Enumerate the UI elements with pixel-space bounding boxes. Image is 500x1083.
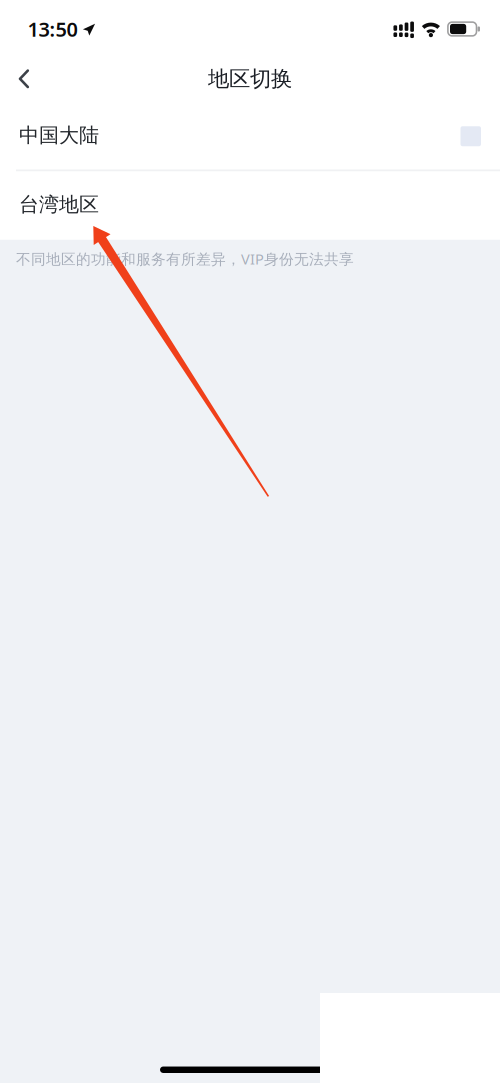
button[interactable]: 中国大陆 [0,103,500,169]
staticText: 13:50 [27,16,77,42]
staticText: 中国大陆 [19,123,99,148]
staticText: 地区切换 [208,66,292,92]
staticText: 不同地区的功能和服务有所差异，VIP身份无法共享 [16,249,354,268]
button[interactable]: 台湾地区 [0,171,500,239]
staticText: 台湾地区 [19,192,99,217]
button[interactable]: 返回 [1,56,47,102]
